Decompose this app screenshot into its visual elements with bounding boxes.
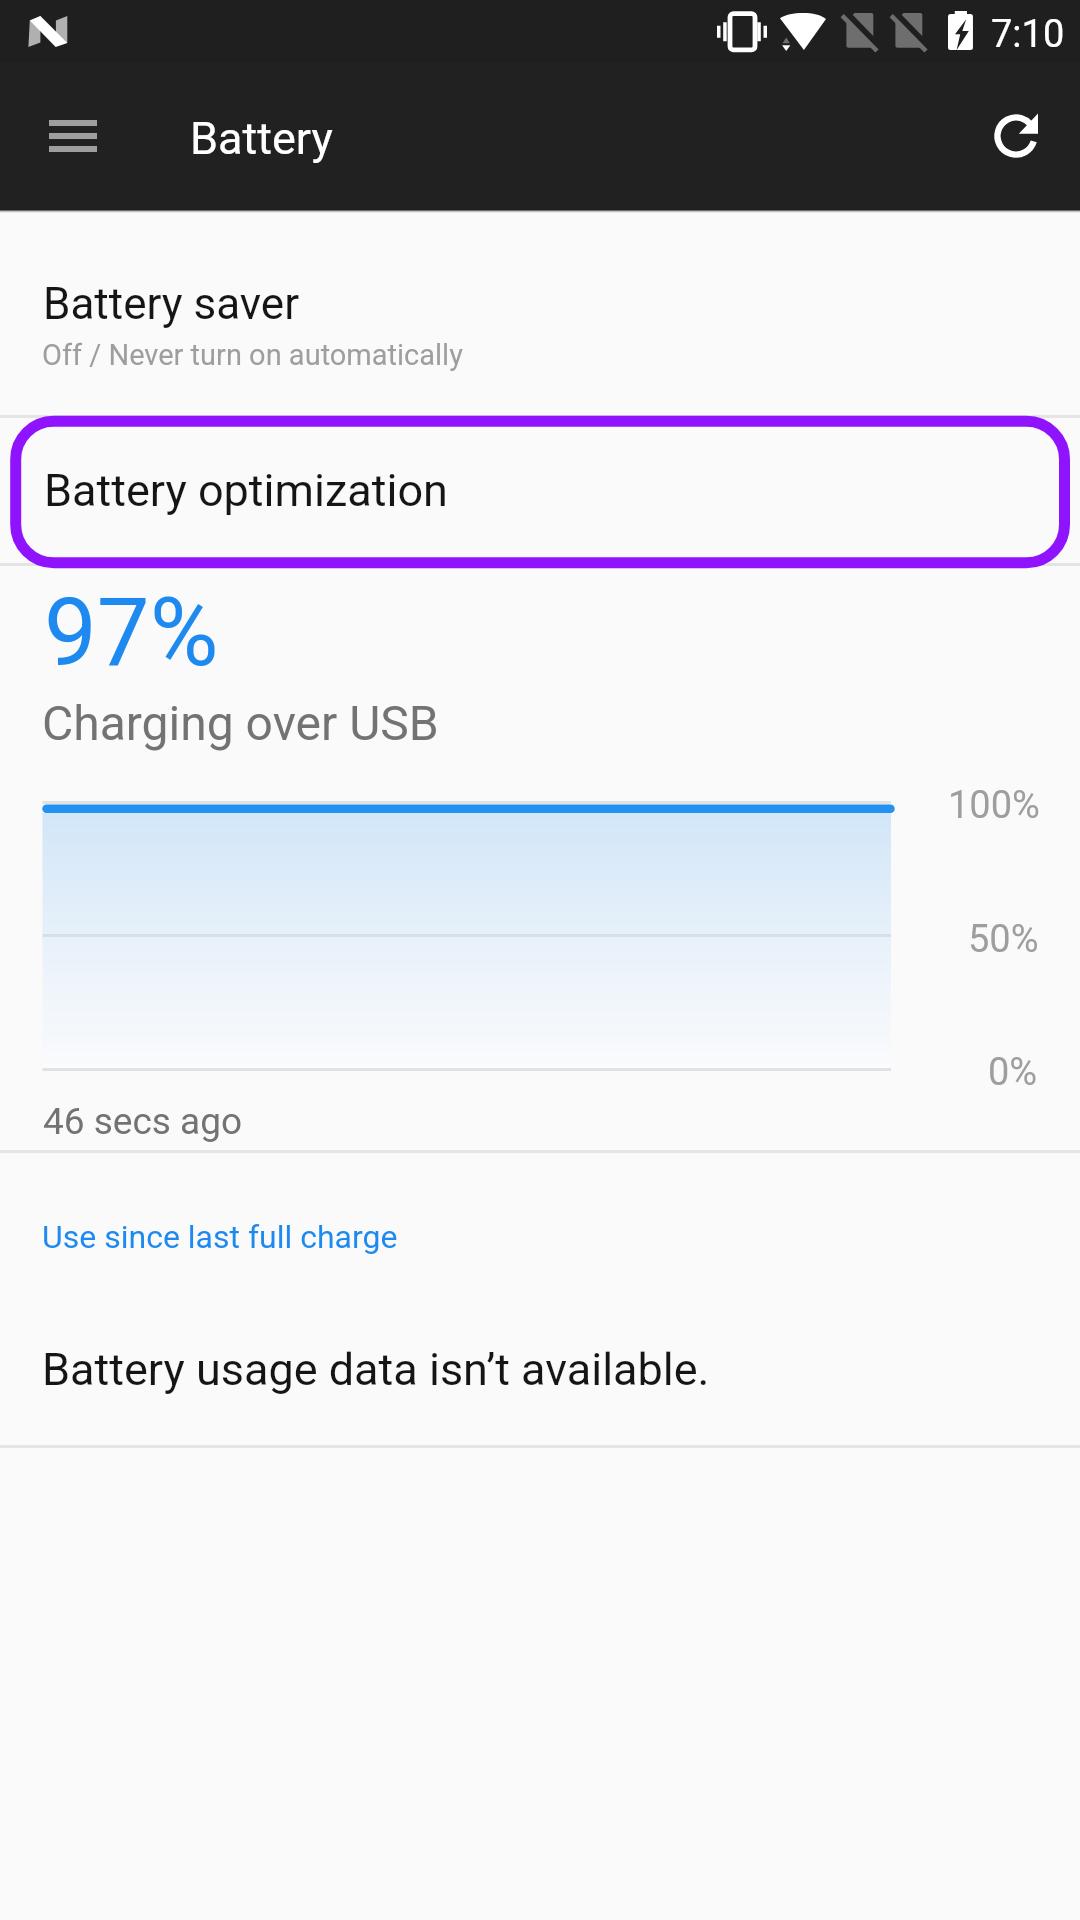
staticText: 100% — [948, 783, 1040, 828]
button[interactable]: Battery optimization — [0, 418, 1080, 563]
button[interactable]: Open navigation drawer — [18, 81, 128, 191]
button[interactable]: Refresh — [964, 81, 1074, 191]
staticText: 7:10 — [991, 12, 1065, 57]
button[interactable]: Battery saver — [0, 209, 1080, 415]
staticText: 0% — [988, 1050, 1038, 1095]
button[interactable]: Use since last full charge — [0, 1151, 1080, 1299]
staticText: Battery saver — [43, 278, 300, 330]
staticText: Battery usage data isn’t available. — [42, 1343, 710, 1396]
staticText: Use since last full charge — [42, 1218, 398, 1256]
staticText: Off / Never turn on automatically — [42, 338, 463, 372]
staticText: Charging over USB — [42, 695, 439, 751]
staticText: 97% — [44, 578, 219, 688]
staticText: Battery — [190, 112, 333, 165]
staticText: 46 secs ago — [43, 1100, 243, 1143]
staticText: Battery optimization — [44, 464, 448, 517]
button[interactable]: Battery usage data isn’t available. — [0, 1299, 1080, 1447]
staticText: 50% — [968, 917, 1039, 962]
